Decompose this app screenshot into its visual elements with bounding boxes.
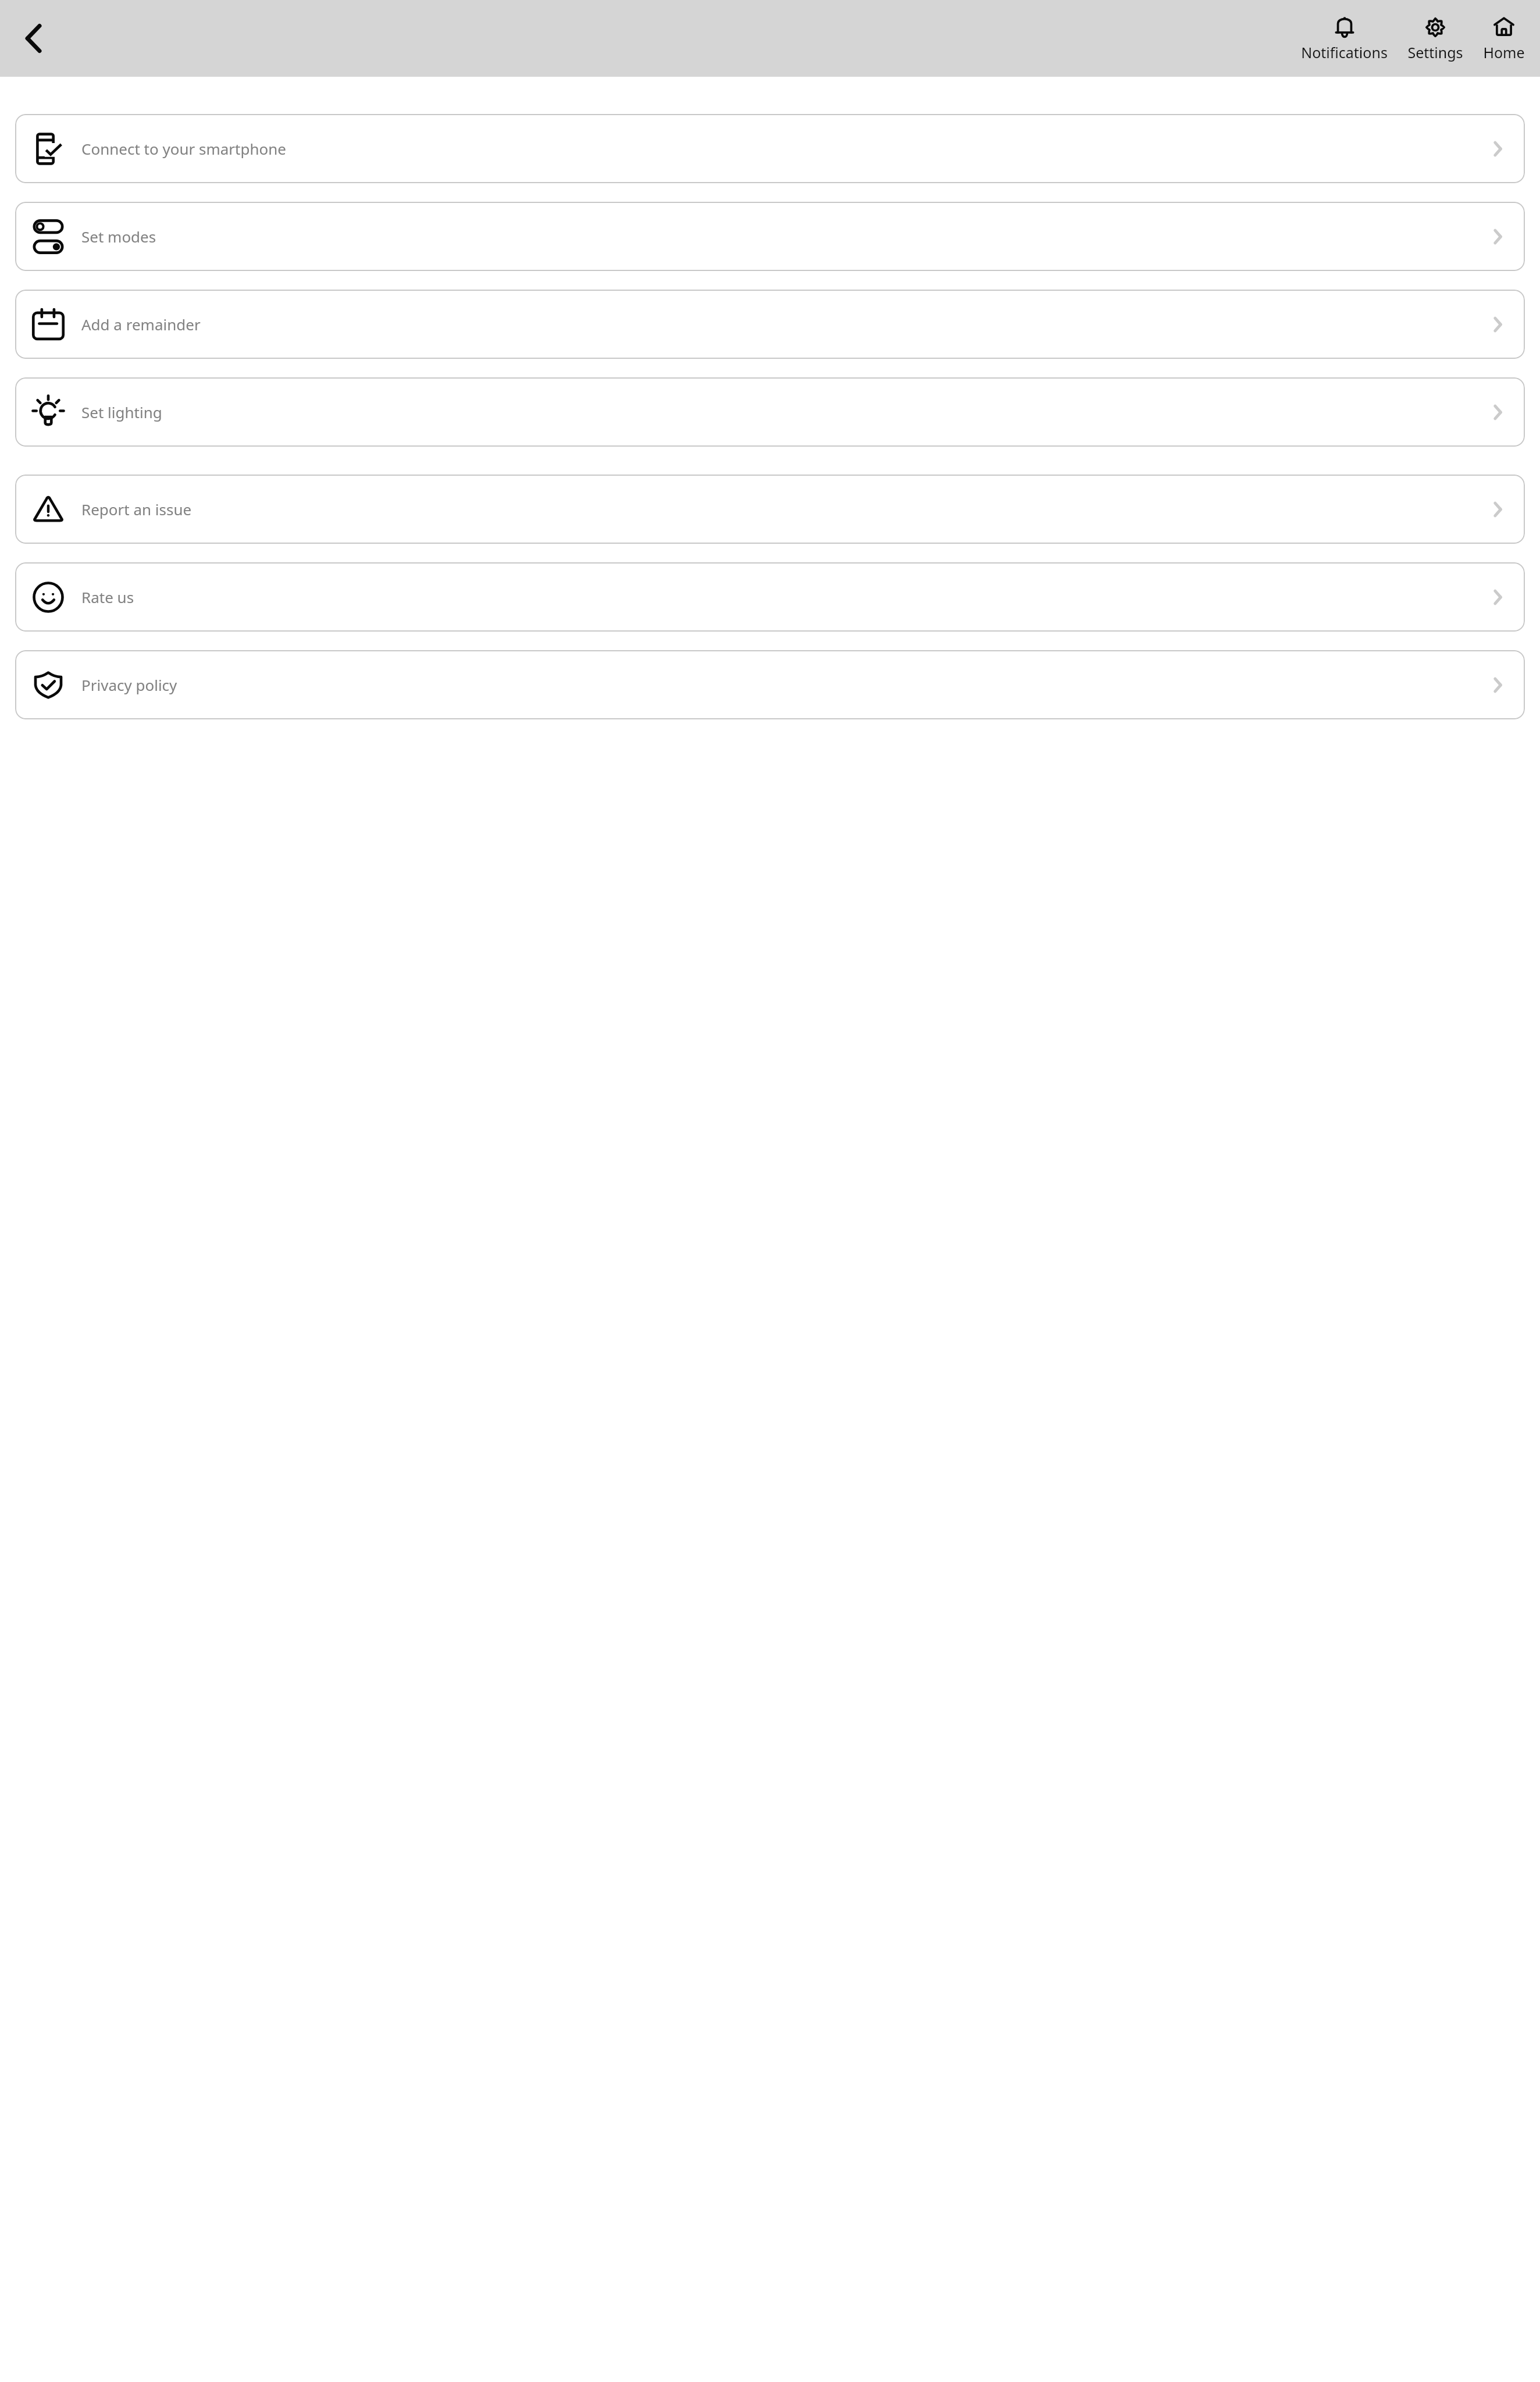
staticText: Home [1483,42,1525,62]
button[interactable]: Home [1480,15,1528,62]
button[interactable]: Set modes [15,202,1525,271]
staticText: Report an issue [81,499,1485,519]
button[interactable]: Settings [1404,15,1467,62]
button[interactable]: Add a remainder [15,290,1525,359]
button[interactable]: Set lighting [15,377,1525,447]
staticText: Set lighting [81,402,1485,422]
staticText: Privacy policy [81,675,1485,695]
button[interactable]: Rate us [15,562,1525,632]
button[interactable]: Connect to your smartphone [15,114,1525,183]
staticText: Add a remainder [81,314,1485,334]
staticText: Notifications [1301,42,1388,62]
staticText: Settings [1407,42,1463,62]
staticText: Set modes [81,226,1485,247]
staticText: Connect to your smartphone [81,138,1485,159]
button[interactable]: Privacy policy [15,650,1525,719]
button[interactable]: Back [12,15,58,62]
button[interactable]: Report an issue [15,475,1525,544]
staticText: Rate us [81,587,1485,607]
button[interactable]: Notifications [1297,15,1391,62]
